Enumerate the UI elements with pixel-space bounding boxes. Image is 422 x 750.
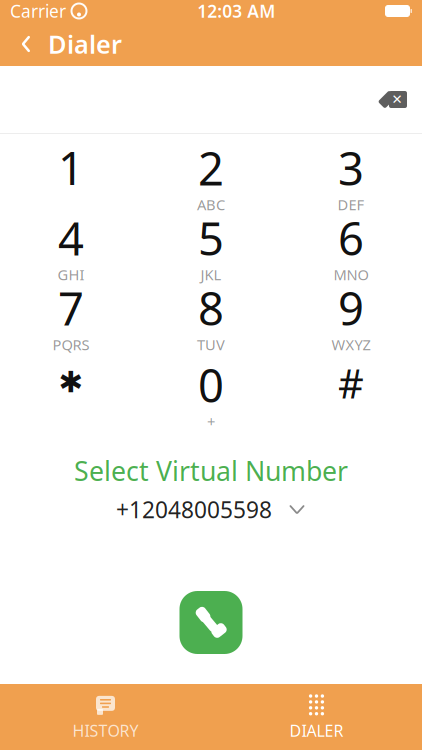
- button[interactable]: #: [281, 348, 421, 430]
- button[interactable]: 9: [281, 277, 421, 347]
- staticText: TUV: [197, 335, 225, 354]
- button[interactable]: HISTORY: [0, 684, 211, 750]
- staticText: Select Virtual Number: [74, 453, 348, 488]
- staticText: Dialer: [48, 27, 122, 61]
- button[interactable]: 4: [1, 207, 141, 277]
- staticText: 5: [198, 208, 224, 268]
- staticText: 2: [198, 138, 224, 198]
- staticText: #: [338, 356, 364, 409]
- button[interactable]: Back: [4, 22, 48, 66]
- staticText: 8: [198, 278, 224, 338]
- staticText: 4: [58, 208, 84, 268]
- staticText: PQRS: [52, 335, 89, 354]
- staticText: DEF: [337, 195, 364, 214]
- staticText: 0: [198, 355, 224, 415]
- staticText: 7: [58, 278, 84, 338]
- staticText: DIALER: [289, 720, 343, 741]
- staticText: ✱: [58, 365, 83, 399]
- staticText: +: [207, 412, 215, 431]
- button[interactable]: 2: [141, 137, 281, 207]
- button[interactable]: 5: [141, 207, 281, 277]
- button[interactable]: 3: [281, 137, 421, 207]
- staticText: 3: [338, 138, 364, 198]
- staticText: 12:03 AM: [197, 0, 275, 22]
- button[interactable]: 1: [1, 137, 141, 207]
- staticText: GHI: [57, 265, 84, 284]
- staticText: ✕: [391, 92, 402, 107]
- staticText: HISTORY: [72, 720, 138, 741]
- button[interactable]: 0: [141, 354, 281, 424]
- staticText: 1: [58, 137, 84, 198]
- staticText: JKL: [200, 265, 221, 284]
- staticText: Carrier: [10, 0, 66, 22]
- button[interactable]: Delete: [368, 79, 422, 119]
- button[interactable]: ✱: [1, 347, 141, 431]
- staticText: +12048005598: [116, 494, 272, 524]
- button[interactable]: DIALER: [211, 684, 422, 750]
- staticText: 9: [338, 278, 364, 338]
- staticText: ABC: [197, 195, 225, 214]
- staticText: WXYZ: [331, 335, 370, 354]
- staticText: MNO: [333, 265, 368, 284]
- button[interactable]: Call: [179, 591, 242, 654]
- button[interactable]: 6: [281, 207, 421, 277]
- button[interactable]: Select Virtual Number: [0, 431, 422, 524]
- staticText: 6: [338, 208, 364, 268]
- button[interactable]: 8: [141, 277, 281, 347]
- button[interactable]: 7: [1, 277, 141, 347]
